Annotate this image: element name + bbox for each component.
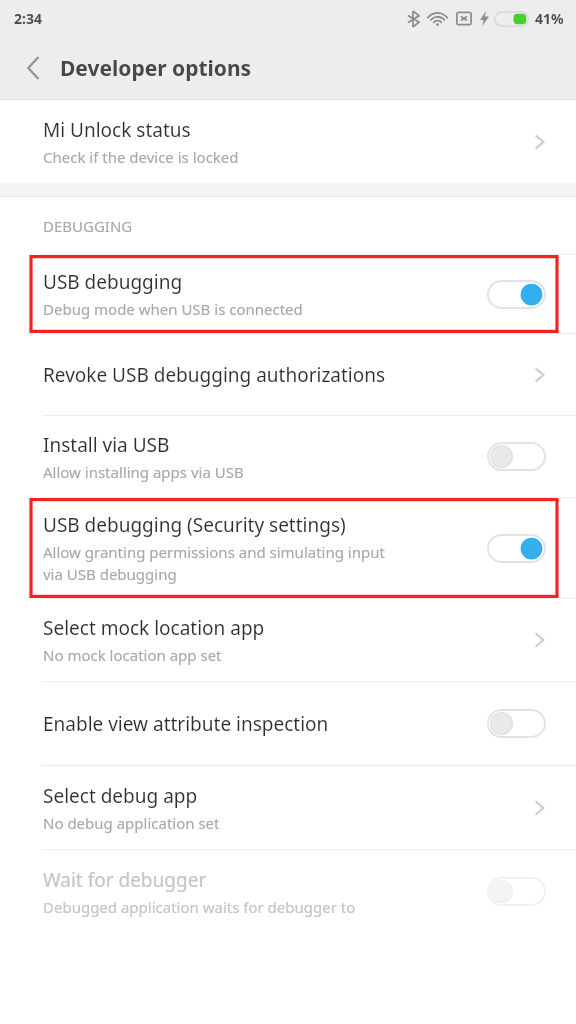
staticText: No debug application set — [43, 813, 220, 833]
button[interactable]: Install via USB — [0, 416, 576, 497]
button[interactable]: Back — [10, 45, 56, 91]
staticText: 2:34 — [14, 9, 42, 28]
staticText: USB debugging — [43, 269, 183, 295]
button[interactable]: USB debugging — [0, 255, 576, 333]
staticText: USB debugging (Security settings) — [43, 512, 346, 538]
staticText: Select mock location app — [43, 615, 265, 641]
staticText: Debug mode when USB is connected — [43, 299, 303, 319]
staticText: Select debug app — [43, 783, 198, 809]
button[interactable]: Enable view attribute inspection — [0, 682, 576, 765]
button[interactable]: USB debugging (Security settings) — [0, 498, 576, 598]
button[interactable]: Select debug app — [0, 766, 576, 849]
staticText: Mi Unlock status — [43, 117, 191, 143]
staticText: DEBUGGING — [43, 216, 133, 236]
staticText: Revoke USB debugging authorizations — [43, 362, 386, 388]
staticText: Debugged application waits for debugger … — [43, 897, 356, 917]
staticText: Install via USB — [43, 432, 170, 458]
staticText: Enable view attribute inspection — [43, 711, 329, 737]
staticText: 41% — [535, 9, 564, 28]
staticText: Developer options — [60, 54, 252, 83]
staticText: Allow installing apps via USB — [43, 462, 244, 482]
button[interactable]: Mi Unlock status — [0, 100, 576, 183]
button[interactable]: Wait for debugger — [0, 850, 576, 933]
button[interactable]: Revoke USB debugging authorizations — [0, 334, 576, 415]
staticText: Allow granting permissions and simulatin… — [43, 542, 403, 585]
staticText: No mock location app set — [43, 645, 222, 665]
staticText: Wait for debugger — [43, 867, 207, 893]
button[interactable]: Select mock location app — [0, 599, 576, 681]
staticText: Check if the device is locked — [43, 147, 239, 167]
